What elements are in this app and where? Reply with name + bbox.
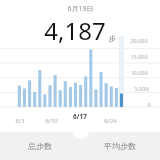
staticText: 步	[109, 34, 116, 43]
staticText: 总步数	[28, 141, 52, 151]
button[interactable]: 平均步数	[80, 132, 160, 160]
button[interactable]: 总步数	[0, 132, 80, 160]
staticText: 15,000	[130, 53, 148, 60]
staticText: 5,000	[134, 85, 149, 92]
staticText: 4,187	[44, 14, 106, 47]
button[interactable]: Date range slider	[72, 122, 89, 139]
staticText: 6/10	[45, 117, 58, 125]
staticText: 6月19日	[67, 4, 94, 14]
staticText: 0	[147, 101, 151, 108]
staticText: 6/24	[104, 117, 117, 125]
staticText: 平均步数	[104, 141, 136, 151]
staticText: 20,000	[130, 37, 148, 44]
staticText: 6/3	[15, 117, 25, 125]
staticText: 10,000	[130, 69, 148, 76]
staticText: 6/17	[73, 112, 87, 121]
